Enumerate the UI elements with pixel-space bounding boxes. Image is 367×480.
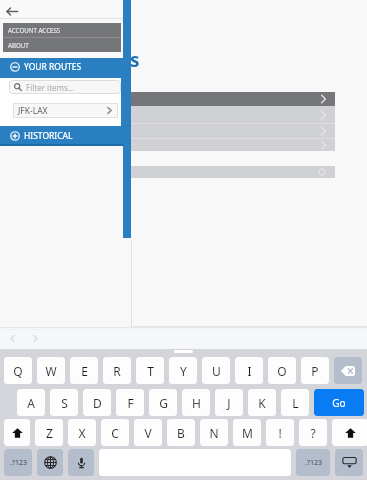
button[interactable]: X [68, 419, 96, 446]
button[interactable]: Previous field [4, 330, 21, 347]
button[interactable]: L [281, 389, 309, 416]
button[interactable]: Q [4, 357, 32, 384]
staticText: .?123 [10, 458, 27, 468]
button[interactable]: W [37, 357, 65, 384]
button[interactable]: N [200, 419, 228, 446]
staticText: M [242, 425, 253, 441]
button[interactable]: Back [1, 1, 22, 22]
staticText: JFK-LAX [18, 105, 48, 117]
staticText: L [292, 395, 299, 411]
staticText: T [147, 363, 154, 379]
staticText: K [258, 395, 266, 411]
button[interactable]: Dictation [68, 449, 94, 476]
staticText: C [111, 425, 119, 441]
staticText: N [209, 425, 219, 441]
button[interactable]: ABOUT [3, 38, 121, 52]
staticText: I [247, 363, 252, 379]
button[interactable]: R [103, 357, 131, 384]
staticText: A [27, 395, 35, 411]
button[interactable]: ! [266, 419, 294, 446]
staticText: ! [278, 425, 282, 441]
staticText: Filter items... [26, 82, 75, 93]
staticText: J [227, 395, 231, 411]
staticText: F [127, 395, 134, 411]
button[interactable]: K [248, 389, 276, 416]
button[interactable]: ACCOUNT ACCESS [3, 23, 121, 37]
button[interactable]: B [167, 419, 195, 446]
button[interactable]: Z [35, 419, 63, 446]
button[interactable]: O [268, 357, 296, 384]
button[interactable]: Shift [332, 419, 367, 446]
staticText: YOUR ROUTES [24, 61, 82, 73]
staticText: D [93, 395, 102, 411]
staticText: W [45, 363, 57, 379]
staticText: s [130, 47, 140, 73]
staticText: S [61, 395, 68, 411]
button[interactable]: Go [314, 389, 364, 416]
staticText: H [192, 395, 201, 411]
button[interactable]: V [134, 419, 162, 446]
staticText: ? [310, 425, 316, 441]
staticText: V [144, 425, 152, 441]
staticText: .?123 [305, 458, 322, 468]
button[interactable]: ? [299, 419, 327, 446]
other: Refresh [318, 168, 326, 176]
button[interactable]: S [50, 389, 78, 416]
staticText: G [159, 395, 168, 411]
staticText: ABOUT [8, 41, 29, 49]
button[interactable]: E [70, 357, 98, 384]
button[interactable]: Shift [4, 419, 30, 446]
button[interactable]: Change keyboard [37, 449, 63, 476]
staticText: U [212, 363, 221, 379]
button[interactable]: D [83, 389, 111, 416]
button[interactable]: U [202, 357, 230, 384]
button[interactable]: I [235, 357, 263, 384]
staticText: B [177, 425, 185, 441]
button[interactable]: Backspace [334, 357, 362, 384]
staticText: X [78, 425, 86, 441]
staticText: P [311, 363, 319, 379]
button[interactable]: .?123 [296, 449, 330, 476]
staticText: ACCOUNT ACCESS [8, 26, 61, 34]
button[interactable]: Next field [27, 330, 44, 347]
staticText: R [113, 363, 121, 379]
staticText: Q [13, 363, 23, 379]
button[interactable]: HISTORICAL [0, 127, 130, 145]
button[interactable]: Filter items... [9, 80, 121, 94]
staticText: Z [46, 425, 53, 441]
button[interactable]: P [301, 357, 329, 384]
button[interactable]: H [182, 389, 210, 416]
staticText: E [81, 363, 88, 379]
button[interactable]: JFK-LAX [13, 103, 118, 118]
staticText: O [277, 363, 287, 379]
button[interactable]: M [233, 419, 261, 446]
button[interactable]: J [215, 389, 243, 416]
staticText: HISTORICAL [24, 130, 73, 142]
button[interactable]: Hide keyboard [335, 449, 363, 476]
button[interactable]: A [17, 389, 45, 416]
staticText: Go [332, 396, 346, 410]
staticText: Y [180, 363, 187, 379]
button[interactable]: YOUR ROUTES [0, 58, 122, 75]
button[interactable]: C [101, 419, 129, 446]
button[interactable]: Y [169, 357, 197, 384]
button[interactable]: G [149, 389, 177, 416]
button[interactable]: T [136, 357, 164, 384]
button[interactable]: F [116, 389, 144, 416]
button[interactable] [131, 92, 335, 106]
button[interactable]: .?123 [4, 449, 32, 476]
